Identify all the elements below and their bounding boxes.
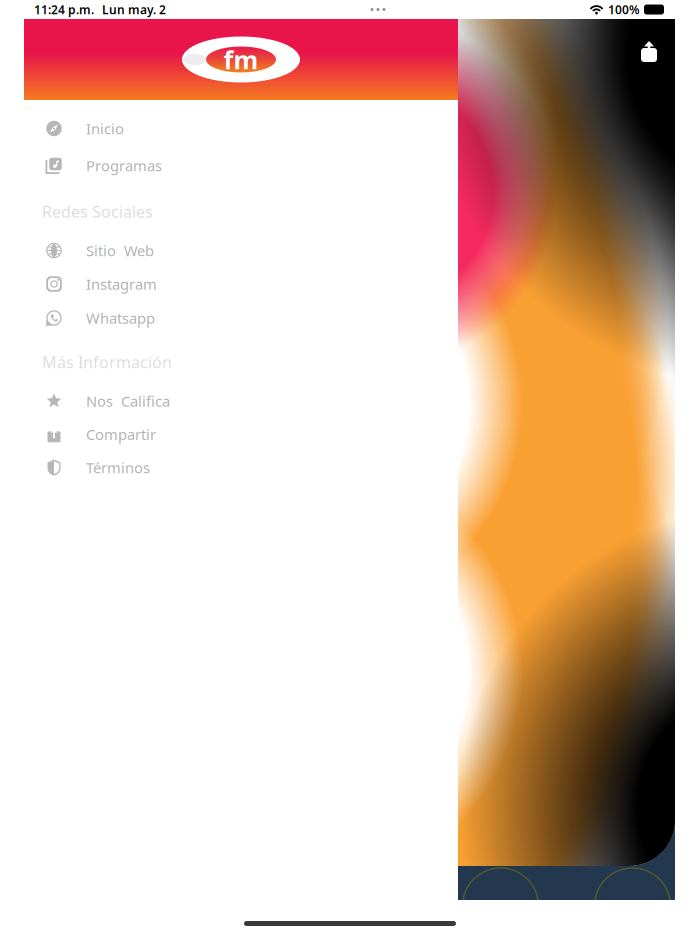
button[interactable]: Términos [0, 451, 458, 484]
staticText: Instagram [86, 274, 157, 294]
staticText: Sitio Web [86, 241, 154, 260]
staticText: Programas [86, 156, 162, 175]
staticText: Más Información [42, 351, 172, 373]
staticText: Inicio [86, 119, 124, 138]
staticText: 11:24 p.m. [34, 1, 94, 17]
button[interactable]: Sitio Web [0, 234, 458, 267]
staticText: Compartir [86, 425, 156, 444]
button[interactable]: Instagram [0, 267, 458, 300]
button[interactable]: Nos Califica [0, 384, 458, 417]
staticText: Nos Califica [86, 391, 170, 411]
button[interactable]: Compartir [0, 418, 458, 451]
button[interactable]: Compartir [635, 19, 675, 65]
staticText: Lun may. 2 [102, 1, 166, 17]
staticText: 100% [608, 1, 640, 17]
button[interactable]: Programas [0, 149, 458, 182]
staticText: Redes Sociales [42, 201, 153, 222]
staticText: fm [223, 43, 258, 76]
staticText: Términos [86, 458, 150, 477]
button[interactable]: Whatsapp [0, 301, 458, 334]
staticText: Whatsapp [86, 308, 155, 328]
button[interactable]: Inicio [0, 112, 458, 145]
